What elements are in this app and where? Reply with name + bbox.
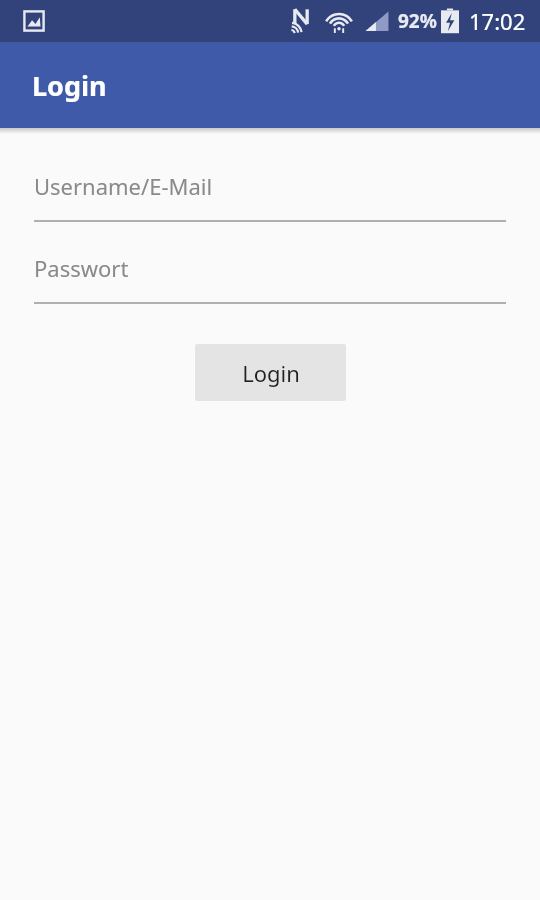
staticText: Login bbox=[242, 358, 300, 388]
staticText: Username/E-Mail bbox=[34, 171, 213, 201]
staticText: Login bbox=[32, 67, 107, 104]
button[interactable]: Passwort bbox=[34, 248, 506, 304]
staticText: 92% bbox=[398, 8, 437, 34]
staticText: 17:02 bbox=[469, 6, 526, 36]
button[interactable]: Login bbox=[195, 344, 346, 401]
button[interactable]: Username/E-Mail bbox=[34, 166, 506, 222]
staticText: Passwort bbox=[34, 253, 129, 283]
